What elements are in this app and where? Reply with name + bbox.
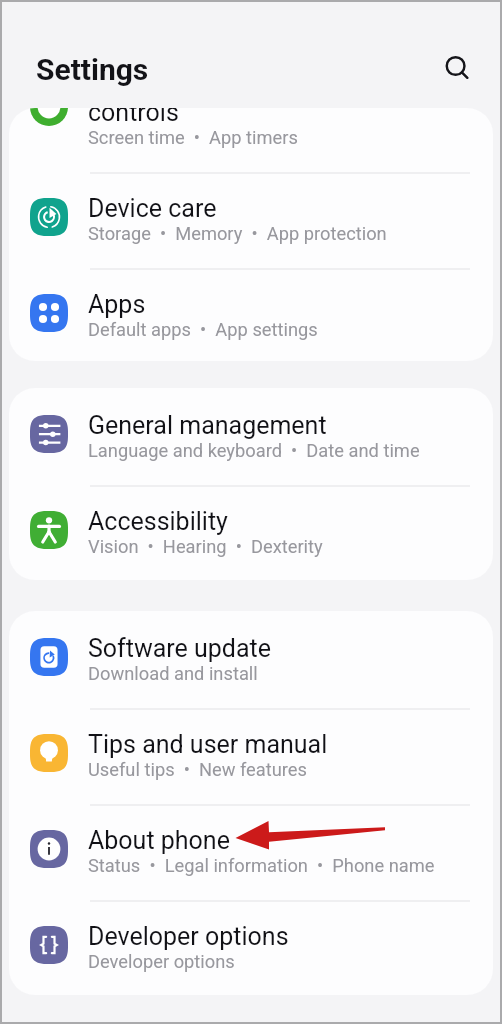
button[interactable]: Software update xyxy=(9,611,493,707)
staticText: Language and keyboard • Date and time xyxy=(88,440,420,461)
staticText: Developer options xyxy=(88,951,235,972)
button[interactable]: Device care xyxy=(9,171,493,267)
button[interactable]: Apps xyxy=(9,267,493,361)
button[interactable]: About phone xyxy=(9,803,493,899)
staticText: Useful tips • New features xyxy=(88,759,308,780)
staticText: Developer options xyxy=(88,922,289,951)
staticText: Screen time • App timers xyxy=(88,127,298,148)
staticText: Digital Wellbeing and parental controls xyxy=(88,108,418,127)
button[interactable]: Developer options xyxy=(9,899,493,995)
staticText: Default apps • App settings xyxy=(88,319,318,340)
staticText: Accessibility xyxy=(88,507,228,536)
staticText: About phone xyxy=(88,826,230,855)
staticText: General management xyxy=(88,411,327,440)
staticText: Storage • Memory • App protection xyxy=(88,223,387,244)
staticText: Software update xyxy=(88,634,272,663)
button[interactable]: Tips and user manual xyxy=(9,707,493,803)
staticText: Device care xyxy=(88,194,217,223)
button[interactable]: Digital Wellbeing and parental controls xyxy=(9,108,493,171)
staticText: Apps xyxy=(88,290,146,319)
staticText: Tips and user manual xyxy=(88,730,328,759)
staticText: Settings xyxy=(36,52,149,87)
button[interactable]: Search xyxy=(434,45,482,93)
staticText: Vision • Hearing • Dexterity xyxy=(88,536,323,557)
button[interactable]: Accessibility xyxy=(9,484,493,580)
staticText: Download and install xyxy=(88,663,258,684)
button[interactable]: General management xyxy=(9,388,493,484)
staticText: Status • Legal information • Phone name xyxy=(88,855,435,876)
